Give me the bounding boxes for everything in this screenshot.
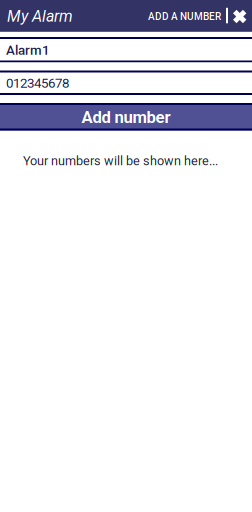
staticText: 012345678 <box>6 75 69 91</box>
button[interactable]: Close <box>230 0 249 32</box>
staticText: ADD A NUMBER <box>148 11 221 22</box>
staticText: Add number <box>81 107 170 127</box>
button[interactable]: ADD A NUMBER <box>143 3 226 30</box>
button[interactable]: Alarm1 <box>0 37 252 62</box>
staticText: Your numbers will be shown here... <box>23 153 218 168</box>
staticText: My Alarm <box>7 7 73 26</box>
button[interactable]: Add number <box>0 103 252 130</box>
staticText: Alarm1 <box>6 42 50 58</box>
button[interactable]: 012345678 <box>0 70 252 95</box>
